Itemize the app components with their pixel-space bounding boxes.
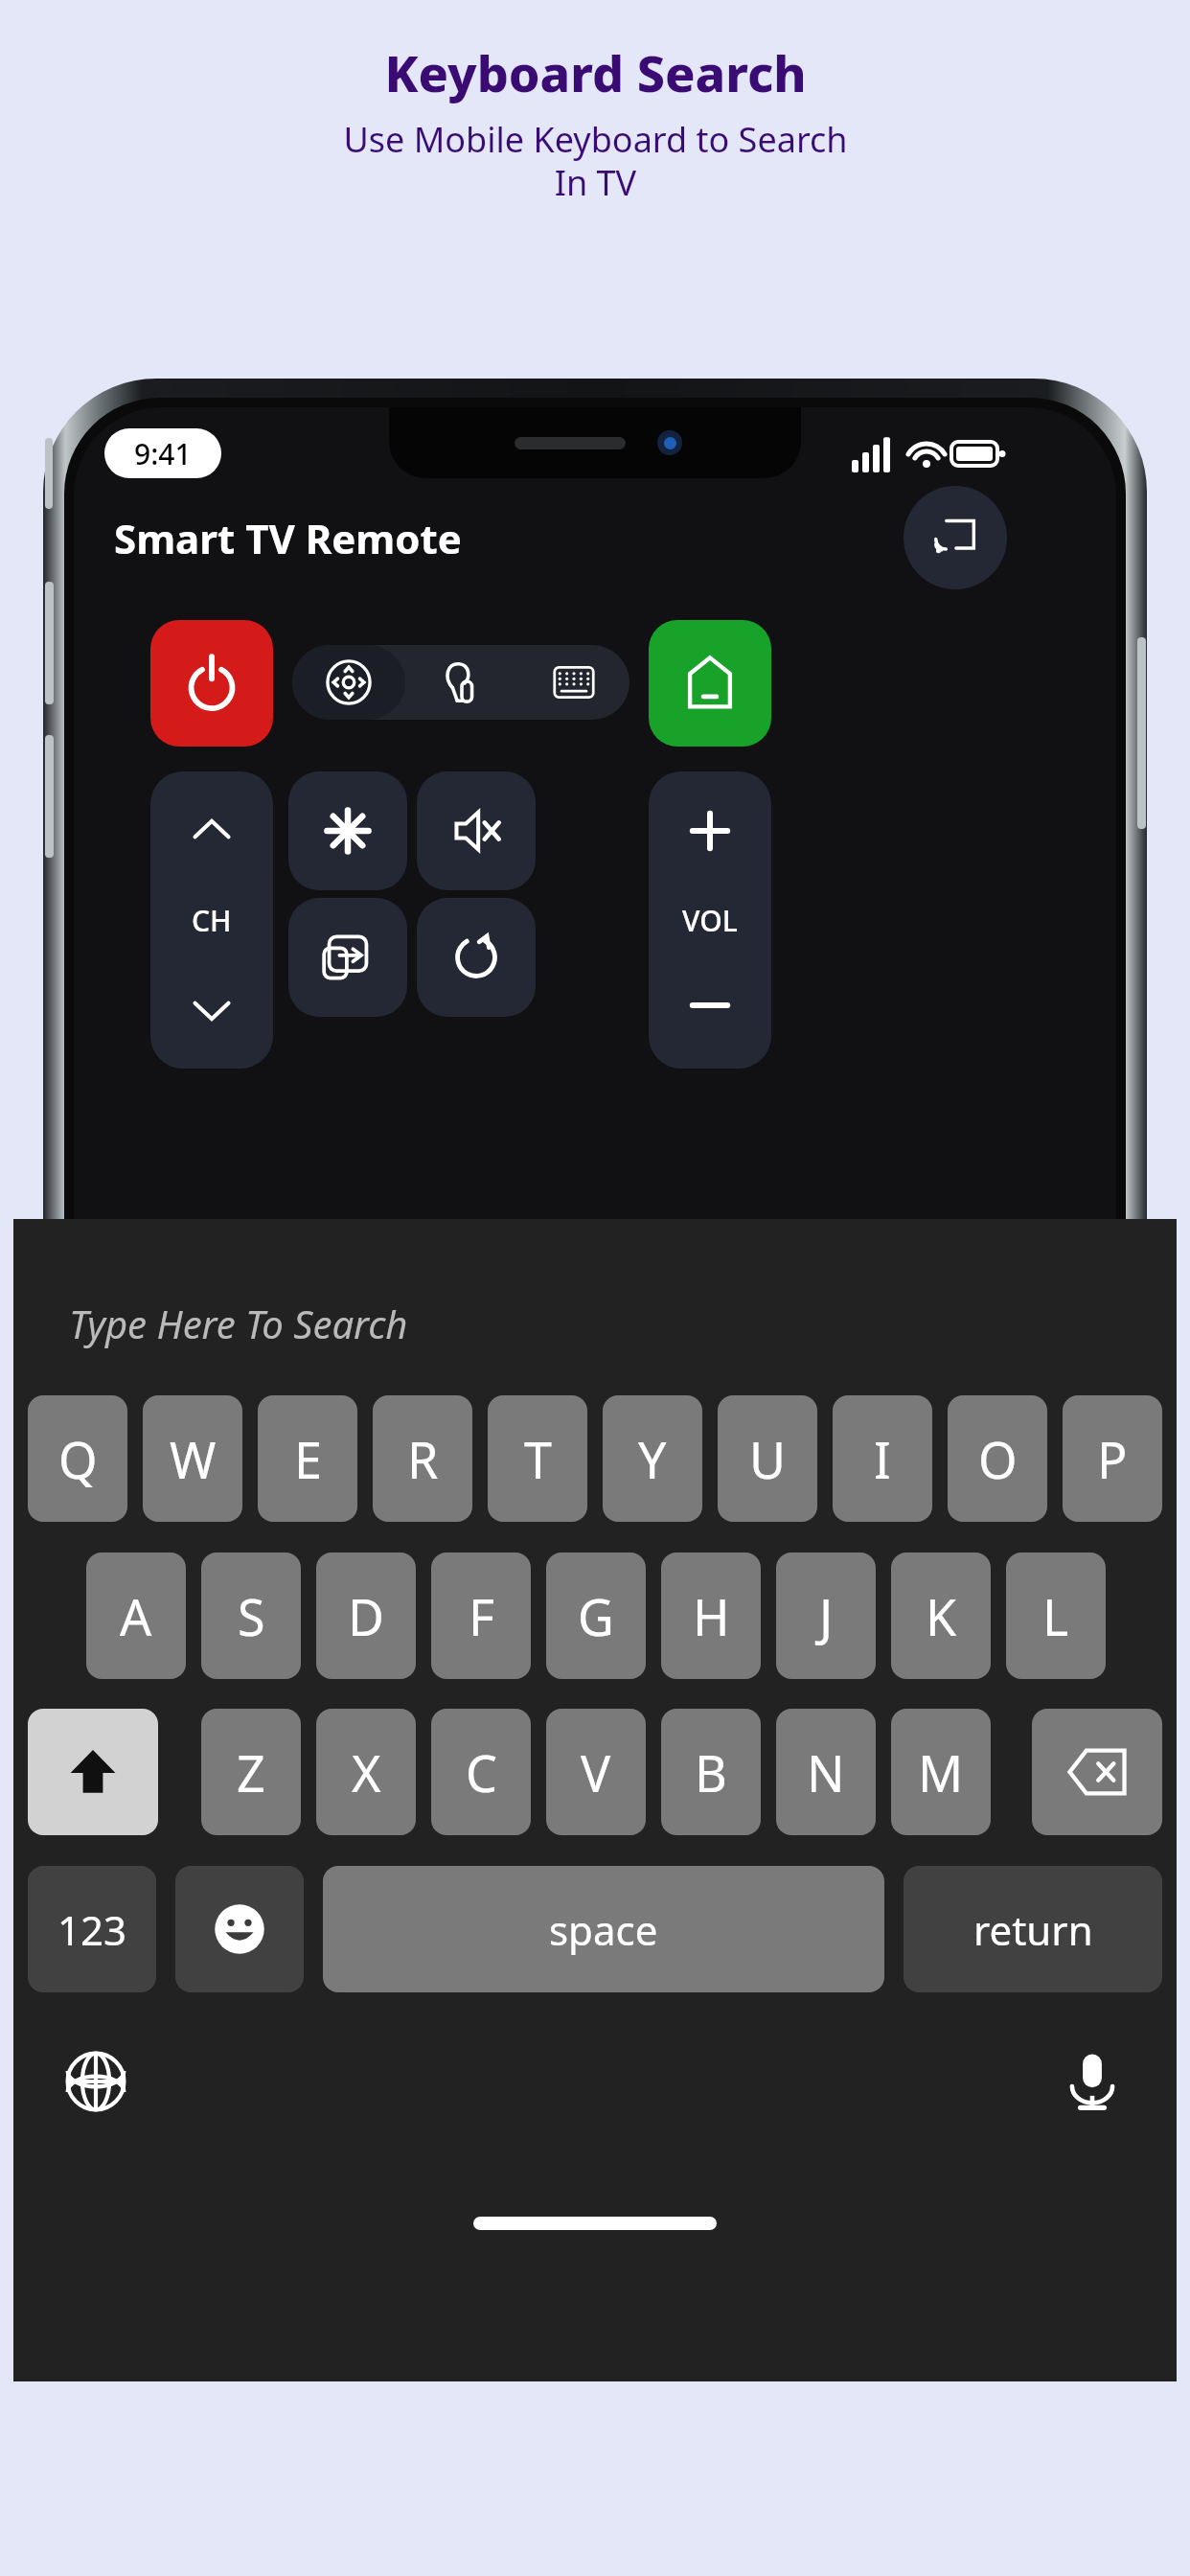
staticText: I bbox=[874, 1425, 891, 1493]
button[interactable]: Keyboard mode bbox=[517, 645, 629, 720]
staticText: space bbox=[549, 1902, 658, 1957]
staticText: A bbox=[120, 1582, 152, 1650]
button[interactable]: space bbox=[323, 1866, 884, 1992]
staticText: P bbox=[1097, 1425, 1128, 1493]
button[interactable]: J bbox=[776, 1552, 876, 1679]
staticText: D bbox=[348, 1582, 384, 1650]
staticText: N bbox=[807, 1738, 845, 1806]
staticText: Type Here To Search bbox=[69, 1298, 408, 1349]
button[interactable]: T bbox=[488, 1395, 587, 1522]
button[interactable]: D bbox=[316, 1552, 416, 1679]
button[interactable]: X bbox=[316, 1709, 416, 1835]
button[interactable]: N bbox=[776, 1709, 876, 1835]
staticText: return bbox=[973, 1902, 1093, 1957]
staticText: S bbox=[238, 1582, 265, 1650]
button[interactable]: U bbox=[718, 1395, 817, 1522]
staticText: Smart TV Remote bbox=[114, 511, 462, 565]
staticText: Y bbox=[638, 1425, 667, 1493]
staticText: R bbox=[407, 1425, 439, 1493]
button[interactable]: A bbox=[86, 1552, 186, 1679]
staticText: C bbox=[466, 1738, 497, 1806]
button[interactable]: Volume down bbox=[649, 920, 771, 1069]
staticText: Use Mobile Keyboard to Search In TV bbox=[343, 116, 848, 205]
button[interactable]: H bbox=[661, 1552, 761, 1679]
staticText: L bbox=[1042, 1582, 1069, 1650]
button[interactable]: P bbox=[1063, 1395, 1162, 1522]
staticText: X bbox=[352, 1738, 381, 1806]
staticText: H bbox=[693, 1582, 730, 1650]
button[interactable]: return bbox=[904, 1866, 1162, 1992]
staticText: 9:41 bbox=[134, 434, 192, 473]
button[interactable]: Voice input bbox=[1054, 2043, 1131, 2120]
button[interactable]: K bbox=[891, 1552, 991, 1679]
button[interactable]: D-pad mode bbox=[292, 645, 405, 720]
button[interactable]: Emoji bbox=[175, 1866, 304, 1992]
staticText: J bbox=[819, 1582, 834, 1650]
button[interactable]: B bbox=[661, 1709, 761, 1835]
staticText: V bbox=[581, 1738, 611, 1806]
staticText: G bbox=[578, 1582, 614, 1650]
button[interactable]: O bbox=[948, 1395, 1047, 1522]
button[interactable]: Channel up bbox=[150, 771, 273, 920]
staticText: CH bbox=[192, 901, 232, 940]
button[interactable]: Volume up bbox=[649, 771, 771, 920]
button[interactable]: 123 bbox=[28, 1866, 156, 1992]
button[interactable]: Power bbox=[150, 620, 273, 747]
button[interactable]: Z bbox=[201, 1709, 301, 1835]
button[interactable]: Refresh bbox=[417, 898, 536, 1017]
button[interactable]: S bbox=[201, 1552, 301, 1679]
staticText: E bbox=[294, 1425, 322, 1493]
button[interactable]: Backspace bbox=[1032, 1709, 1162, 1835]
staticText: F bbox=[469, 1582, 494, 1650]
staticText: O bbox=[978, 1425, 1018, 1493]
staticText: U bbox=[749, 1425, 787, 1493]
button[interactable]: Cast to TV bbox=[904, 486, 1007, 589]
staticText: T bbox=[524, 1425, 552, 1493]
button[interactable]: Mute bbox=[417, 771, 536, 890]
button[interactable]: Channel down bbox=[150, 920, 273, 1069]
staticText: M bbox=[918, 1738, 964, 1806]
button[interactable]: F bbox=[431, 1552, 531, 1679]
button[interactable]: R bbox=[373, 1395, 472, 1522]
button[interactable]: G bbox=[546, 1552, 646, 1679]
button[interactable]: Source bbox=[288, 898, 407, 1017]
button[interactable]: W bbox=[143, 1395, 242, 1522]
staticText: W bbox=[170, 1425, 217, 1493]
button[interactable]: V bbox=[546, 1709, 646, 1835]
button[interactable]: Asterisk bbox=[288, 771, 407, 890]
staticText: Keyboard Search bbox=[384, 38, 807, 106]
staticText: K bbox=[926, 1582, 957, 1650]
button[interactable]: E bbox=[258, 1395, 357, 1522]
button[interactable]: I bbox=[833, 1395, 932, 1522]
button[interactable]: Q bbox=[28, 1395, 127, 1522]
button[interactable]: Touchpad mode bbox=[405, 645, 517, 720]
button[interactable]: Y bbox=[603, 1395, 702, 1522]
button[interactable]: L bbox=[1006, 1552, 1106, 1679]
button[interactable]: Shift bbox=[28, 1709, 158, 1835]
staticText: VOL bbox=[682, 901, 738, 940]
button[interactable]: M bbox=[891, 1709, 991, 1835]
staticText: Q bbox=[58, 1425, 98, 1493]
button[interactable]: Home bbox=[649, 620, 771, 747]
staticText: 123 bbox=[57, 1902, 127, 1957]
button[interactable]: Change keyboard bbox=[57, 2043, 134, 2120]
staticText: Z bbox=[237, 1738, 265, 1806]
staticText: B bbox=[695, 1738, 727, 1806]
button[interactable]: C bbox=[431, 1709, 531, 1835]
